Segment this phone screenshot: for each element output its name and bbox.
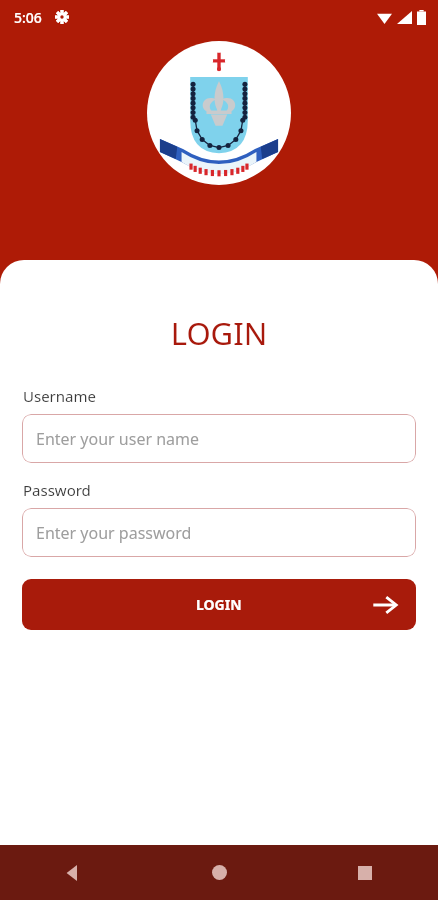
staticText: Password xyxy=(23,480,91,500)
button[interactable]: Recents xyxy=(292,845,438,900)
staticText: LOGIN xyxy=(0,312,438,354)
staticText: Enter your user name xyxy=(36,428,200,450)
staticText: Username xyxy=(23,386,96,406)
button[interactable]: Enter your password xyxy=(22,508,416,557)
staticText: Enter your password xyxy=(36,522,192,544)
button[interactable]: Back xyxy=(0,845,146,900)
button[interactable]: LOGIN xyxy=(22,579,416,630)
button[interactable]: Enter your user name xyxy=(22,414,416,463)
staticText: LOGIN xyxy=(196,595,242,614)
button[interactable]: Home xyxy=(146,845,292,900)
staticText: 5:06 xyxy=(14,8,42,27)
